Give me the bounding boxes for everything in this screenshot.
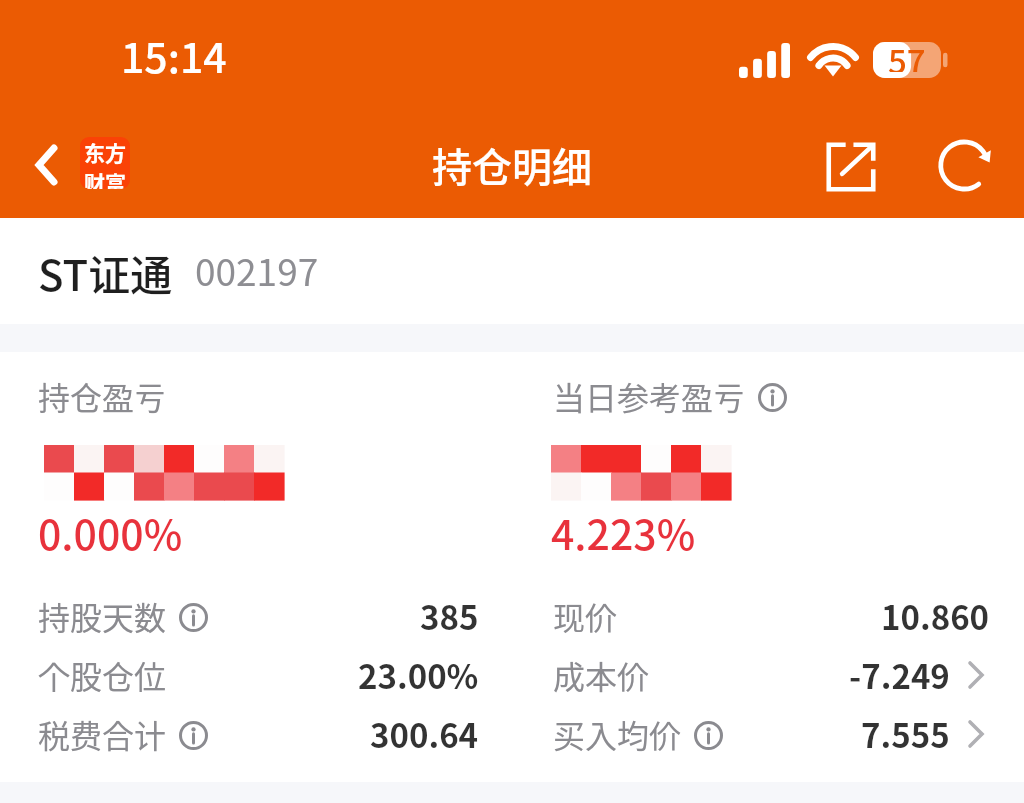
staticText: 7.555 — [861, 710, 950, 758]
staticText: 385 — [420, 592, 479, 640]
staticText: 10.860 — [881, 592, 990, 640]
staticText: 成本价 — [553, 652, 650, 698]
button[interactable]: Info — [179, 721, 208, 750]
staticText: 税费合计 — [38, 711, 167, 757]
staticText: 当日参考盈亏 — [553, 373, 746, 419]
staticText: ST证通 — [38, 242, 173, 303]
staticText: 002197 — [195, 243, 319, 297]
button[interactable]: Info — [179, 603, 208, 632]
staticText: 300.64 — [370, 710, 479, 758]
staticText: 持仓盈亏 — [38, 373, 167, 419]
button[interactable]: Back — [16, 135, 76, 195]
button[interactable]: Share — [813, 132, 889, 202]
staticText: 23.00% — [358, 651, 479, 699]
staticText: 个股仓位 — [38, 652, 167, 698]
button[interactable]: Info — [694, 721, 723, 750]
staticText: 57 — [888, 36, 926, 72]
staticText: 0.000% — [38, 502, 183, 561]
button[interactable]: Refresh — [925, 130, 1001, 200]
button[interactable]: 买入均价 — [553, 706, 1024, 762]
staticText: 15:14 — [121, 25, 227, 84]
staticText: 财富 — [84, 167, 126, 189]
staticText: 持股天数 — [38, 593, 167, 639]
staticText: 现价 — [553, 593, 618, 639]
staticText: -7.249 — [849, 651, 950, 699]
button[interactable]: Info — [758, 383, 787, 412]
button[interactable]: East Money — [80, 137, 130, 189]
staticText: 4.223% — [551, 502, 696, 561]
staticText: 东方 — [84, 137, 126, 167]
staticText: 买入均价 — [553, 711, 682, 757]
button[interactable]: 成本价 — [553, 647, 1024, 703]
staticText: 持仓明细 — [432, 136, 592, 194]
